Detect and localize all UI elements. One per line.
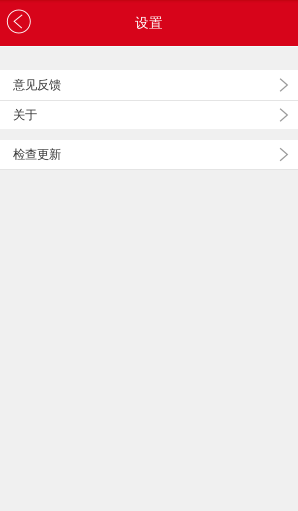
staticText: 检查更新 xyxy=(13,147,61,162)
button[interactable]: Back xyxy=(0,0,40,46)
button[interactable]: 意见反馈 xyxy=(0,70,298,100)
staticText: 设置 xyxy=(135,14,163,31)
button[interactable]: 关于 xyxy=(0,101,298,129)
staticText: 关于 xyxy=(13,107,37,123)
button[interactable]: 检查更新 xyxy=(0,140,298,169)
staticText: 意见反馈 xyxy=(13,77,61,93)
